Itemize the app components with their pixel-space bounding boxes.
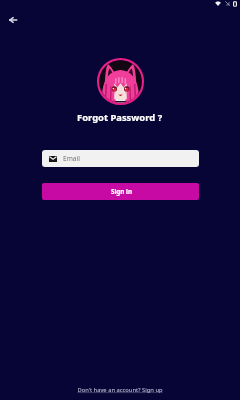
staticText: Forgot Password ?: [77, 111, 163, 124]
button[interactable]: Don't have an account? Sign up: [77, 386, 163, 394]
staticText: Email: [63, 154, 80, 163]
button[interactable]: Back: [2, 10, 22, 30]
button[interactable]: Sign in: [42, 183, 199, 200]
button[interactable]: Email: [42, 150, 199, 167]
staticText: Don't have an account? Sign up: [77, 386, 163, 394]
staticText: Sign in: [111, 187, 133, 196]
